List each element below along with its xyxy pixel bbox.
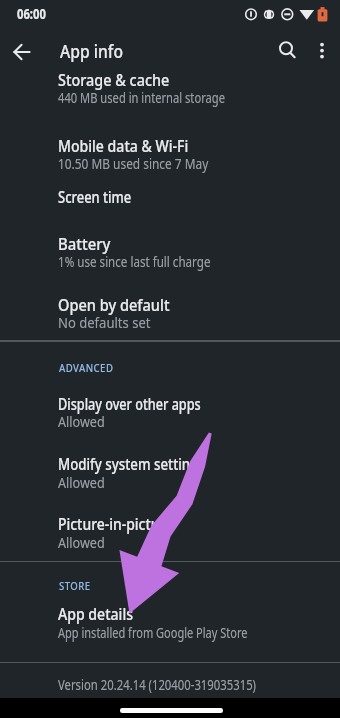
staticText: ADVANCED [59, 360, 113, 375]
button[interactable] [6, 36, 38, 68]
staticText: Version 20.24.14 (120400-319035315) [58, 674, 256, 694]
staticText: App installed from Google Play Store [58, 622, 248, 642]
staticText: Picture-in-picture [58, 513, 174, 535]
staticText: Allowed [58, 532, 105, 552]
button[interactable] [271, 36, 302, 67]
button[interactable] [306, 36, 337, 67]
staticText: Battery [58, 233, 111, 255]
staticText: 10.50 MB used since 7 May [58, 153, 209, 173]
button[interactable]: Battery [0, 230, 340, 290]
staticText: Storage & cache [58, 69, 170, 91]
button[interactable]: Display over other apps [0, 384, 340, 442]
staticText: No defaults set [58, 312, 151, 332]
staticText: 06:00 [17, 4, 46, 24]
staticText: Mobile data & Wi-Fi [58, 135, 189, 157]
staticText: 440 MB used in internal storage [58, 87, 225, 107]
button[interactable]: Picture-in-picture [0, 502, 340, 561]
staticText: Allowed [58, 472, 105, 492]
button[interactable]: Storage & cache [0, 62, 340, 126]
button[interactable]: Modify system setting [0, 442, 340, 502]
staticText: Display over other apps [58, 393, 201, 415]
staticText: App details [58, 603, 134, 625]
button[interactable]: Mobile data & Wi-Fi [0, 126, 340, 186]
staticText: 1% use since last full charge [58, 251, 211, 271]
button[interactable]: Screen time [0, 186, 340, 230]
staticText: Screen time [58, 186, 132, 208]
staticText: Open by default [58, 294, 170, 316]
staticText: STORE [59, 578, 91, 593]
staticText: App info [60, 39, 123, 64]
button[interactable]: App details [0, 596, 340, 656]
staticText: Allowed [58, 411, 105, 431]
staticText: Modify system setting [58, 453, 199, 475]
button[interactable] [120, 708, 223, 713]
button[interactable]: Open by default [0, 290, 340, 338]
